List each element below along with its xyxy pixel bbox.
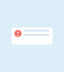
button[interactable]: Conversation xyxy=(11,27,52,44)
